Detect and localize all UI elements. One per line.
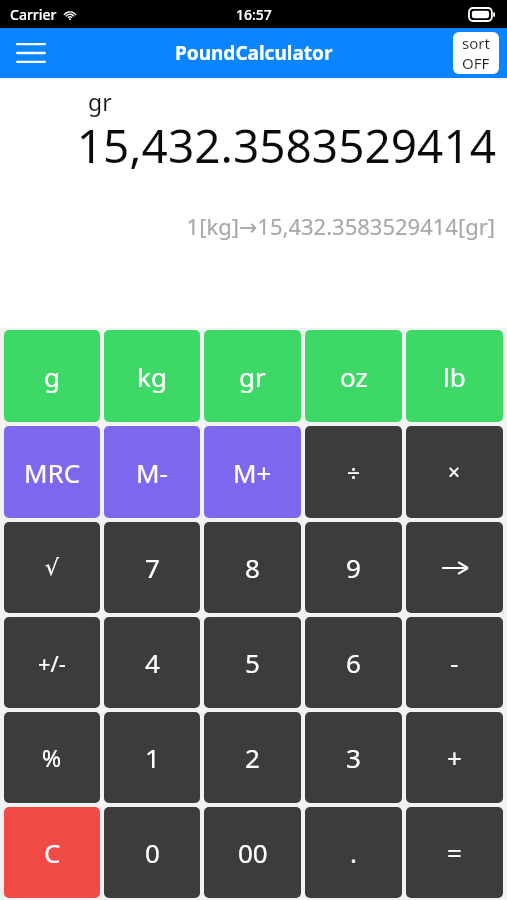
staticText: 2 <box>245 740 260 775</box>
button[interactable]: + <box>406 712 503 803</box>
button[interactable]: g <box>4 330 100 422</box>
button[interactable]: 8 <box>204 522 301 613</box>
staticText: 1[kg]→15,432.3583529414[gr] <box>186 211 495 241</box>
staticText: +/- <box>38 648 66 678</box>
staticText: ÷ <box>347 457 361 488</box>
staticText: g <box>44 359 60 394</box>
staticText: kg <box>137 359 167 394</box>
staticText: MRC <box>24 455 81 490</box>
staticText: Carrier <box>10 5 57 24</box>
button[interactable]: 00 <box>204 807 301 898</box>
button[interactable]: × <box>406 426 503 518</box>
button[interactable]: kg <box>104 330 200 422</box>
staticText: 3 <box>346 740 361 775</box>
button[interactable]: M+ <box>204 426 301 518</box>
staticText: % <box>42 742 62 773</box>
button[interactable]: gr <box>204 330 301 422</box>
staticText: 16:57 <box>236 5 272 24</box>
button[interactable]: ÷ <box>305 426 402 518</box>
staticText: + <box>447 740 462 775</box>
button[interactable]: √ <box>4 522 100 613</box>
button[interactable]: M- <box>104 426 200 518</box>
staticText: 9 <box>346 550 361 585</box>
staticText: 6 <box>346 645 361 680</box>
staticText: gr <box>239 359 266 394</box>
button[interactable]: lb <box>406 330 503 422</box>
staticText: M+ <box>233 455 272 490</box>
button[interactable]: = <box>406 807 503 898</box>
button[interactable]: 4 <box>104 617 200 708</box>
button[interactable]: - <box>406 617 503 708</box>
button[interactable]: MRC <box>4 426 100 518</box>
other: Backspace <box>406 522 503 613</box>
button[interactable]: 5 <box>204 617 301 708</box>
staticText: oz <box>340 359 368 394</box>
staticText: C <box>44 835 61 870</box>
staticText: 15,432.3583529414 <box>76 114 496 177</box>
staticText: M- <box>136 455 168 490</box>
staticText: gr <box>88 86 112 117</box>
staticText: × <box>448 458 461 487</box>
button[interactable]: . <box>305 807 402 898</box>
staticText: √ <box>45 555 60 581</box>
button[interactable]: +/- <box>4 617 100 708</box>
button[interactable]: Backspace <box>406 522 503 613</box>
button[interactable]: 3 <box>305 712 402 803</box>
button[interactable]: 0 <box>104 807 200 898</box>
staticText: OFF <box>462 53 490 73</box>
staticText: = <box>447 835 462 870</box>
button[interactable]: 9 <box>305 522 402 613</box>
button[interactable]: 1 <box>104 712 200 803</box>
staticText: 4 <box>145 645 160 680</box>
staticText: . <box>350 835 357 870</box>
button[interactable]: 7 <box>104 522 200 613</box>
staticText: 1 <box>145 740 160 775</box>
staticText: 5 <box>245 645 260 680</box>
button[interactable]: oz <box>305 330 402 422</box>
staticText: - <box>450 645 459 680</box>
staticText: 7 <box>145 550 160 585</box>
staticText: PoundCalculator <box>175 40 333 66</box>
button[interactable]: sort <box>453 32 499 74</box>
button[interactable]: % <box>4 712 100 803</box>
button[interactable]: Menu <box>8 30 54 76</box>
staticText: 00 <box>238 835 268 870</box>
button[interactable]: 2 <box>204 712 301 803</box>
staticText: 0 <box>145 835 160 870</box>
button[interactable]: 6 <box>305 617 402 708</box>
staticText: lb <box>443 359 466 394</box>
staticText: sort <box>462 33 490 53</box>
staticText: 8 <box>245 550 260 585</box>
button[interactable]: C <box>4 807 100 898</box>
